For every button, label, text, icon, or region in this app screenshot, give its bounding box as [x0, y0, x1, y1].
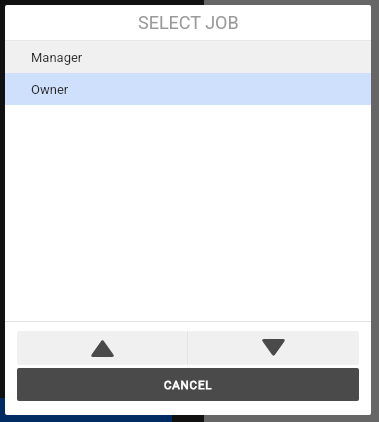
staticText: CANCEL [164, 378, 213, 391]
button[interactable]: CANCEL [17, 368, 359, 401]
button[interactable]: Owner [5, 73, 371, 105]
staticText: Owner [31, 82, 69, 97]
staticText: Manager [31, 50, 83, 65]
button[interactable]: Manager [5, 41, 371, 73]
button[interactable]: Move down [188, 331, 359, 365]
staticText: SELECT JOB [138, 12, 239, 33]
button[interactable]: Move up [17, 331, 187, 365]
